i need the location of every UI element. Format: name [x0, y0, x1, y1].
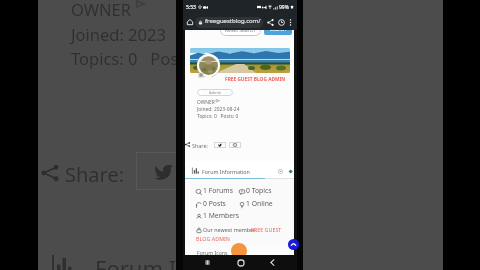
button[interactable]: 1 Online: [239, 199, 283, 210]
staticText: 1 Forums: [203, 186, 233, 195]
button[interactable]: History: [276, 17, 286, 27]
button[interactable]: Share on WhatsApp: [229, 142, 241, 148]
staticText: Topics: 0 Pos: [71, 47, 179, 69]
staticText: Reset Search: [225, 27, 256, 34]
button[interactable]: 0 Posts: [196, 199, 240, 210]
staticText: 0 Posts: [203, 199, 226, 208]
staticText: BLOG ADMIN: [196, 235, 230, 242]
button[interactable]: Share on Twitter: [214, 142, 226, 148]
button[interactable]: Our newest member:: [196, 225, 286, 243]
button[interactable]: Profile photo: [197, 54, 220, 77]
staticText: 99%: [279, 4, 289, 11]
button[interactable]: Back: [265, 255, 280, 270]
staticText: Admin: [209, 90, 222, 95]
button[interactable]: Recents: [200, 255, 215, 270]
button[interactable]: 1 Members: [196, 211, 240, 222]
button[interactable]: Reset Search: [220, 25, 261, 36]
staticText: Forum Icons: [197, 249, 228, 256]
staticText: Share:: [65, 161, 125, 188]
staticText: 1 Members: [203, 211, 240, 220]
staticText: Share:: [192, 142, 208, 149]
button[interactable]: Search: [264, 24, 292, 35]
staticText: freeguestblog.com/pa: [205, 17, 263, 28]
staticText: OWNER: [197, 99, 215, 106]
button[interactable]: Scroll to top: [288, 239, 299, 250]
staticText: 5:53: [186, 4, 196, 11]
button[interactable]: Home: [185, 17, 195, 27]
staticText: Forum In: [95, 253, 190, 270]
staticText: Joined: 2023: [71, 23, 166, 45]
button[interactable]: 0 Topics: [239, 186, 283, 197]
staticText: Our newest member:: [203, 226, 257, 233]
button[interactable]: Share: [265, 17, 275, 27]
button[interactable]: Admin: [197, 89, 233, 96]
button[interactable]: More options: [286, 18, 295, 27]
button[interactable]: Home: [233, 255, 248, 270]
staticText: FREE GUEST BLOG ADMIN: [225, 76, 286, 83]
staticText: Topics: 0 Posts: 0: [197, 113, 239, 120]
staticText: Forum Information: [202, 168, 250, 175]
button[interactable]: 1 Forums: [196, 186, 240, 197]
staticText: Joined: 2023-08-24: [197, 106, 240, 113]
staticText: 1 Online: [246, 199, 273, 208]
staticText: Search: [270, 26, 286, 33]
staticText: 0 Topics: [246, 186, 272, 195]
staticText: FREE GUEST: [251, 226, 282, 233]
staticText: OWNER: [71, 0, 132, 20]
button[interactable]: freeguestblog.com/pa: [195, 17, 263, 28]
